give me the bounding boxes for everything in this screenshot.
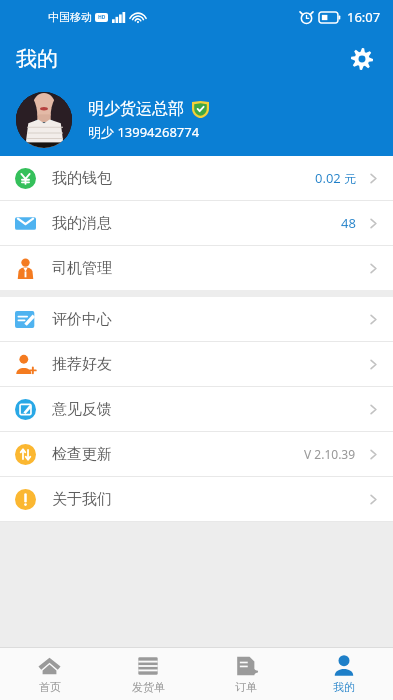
staticText: HD xyxy=(98,14,106,21)
button[interactable]: 评价中心 xyxy=(0,297,393,341)
staticText: 发货单 xyxy=(132,680,165,694)
button[interactable]: 检查更新 xyxy=(0,432,393,476)
staticText: 我的消息 xyxy=(52,214,112,233)
button[interactable]: 明少货运总部 xyxy=(0,84,393,156)
staticText: 首页 xyxy=(39,680,61,694)
button[interactable]: 首页 xyxy=(0,648,99,700)
staticText: 中国移动 xyxy=(48,10,92,24)
staticText: V 2.10.39 xyxy=(304,446,356,462)
button[interactable]: 我的钱包 xyxy=(0,156,393,200)
staticText: 我的钱包 xyxy=(52,169,112,188)
staticText: 检查更新 xyxy=(52,445,112,464)
button[interactable]: Settings xyxy=(345,42,379,76)
staticText: 16:07 xyxy=(347,8,381,26)
staticText: 评价中心 xyxy=(52,310,112,329)
button[interactable]: 发货单 xyxy=(99,648,197,700)
staticText: 明少 13994268774 xyxy=(88,123,200,141)
staticText: 订单 xyxy=(235,680,257,694)
button[interactable]: 我的 xyxy=(295,648,393,700)
staticText: 司机管理 xyxy=(52,259,112,278)
button[interactable]: 关于我们 xyxy=(0,477,393,521)
button[interactable]: 订单 xyxy=(197,648,295,700)
button[interactable]: 意见反馈 xyxy=(0,387,393,431)
staticText: 我的 xyxy=(16,46,58,72)
staticText: 0.02 xyxy=(315,169,341,187)
staticText: 我的 xyxy=(333,680,355,694)
button[interactable]: 司机管理 xyxy=(0,246,393,290)
staticText: 意见反馈 xyxy=(52,400,112,419)
staticText: 推荐好友 xyxy=(52,355,112,374)
staticText: 48 xyxy=(341,214,356,232)
button[interactable]: 我的消息 xyxy=(0,201,393,245)
staticText: 明少货运总部 xyxy=(88,99,184,119)
staticText: 关于我们 xyxy=(52,490,112,509)
button[interactable]: 推荐好友 xyxy=(0,342,393,386)
staticText: 元 xyxy=(344,171,356,186)
